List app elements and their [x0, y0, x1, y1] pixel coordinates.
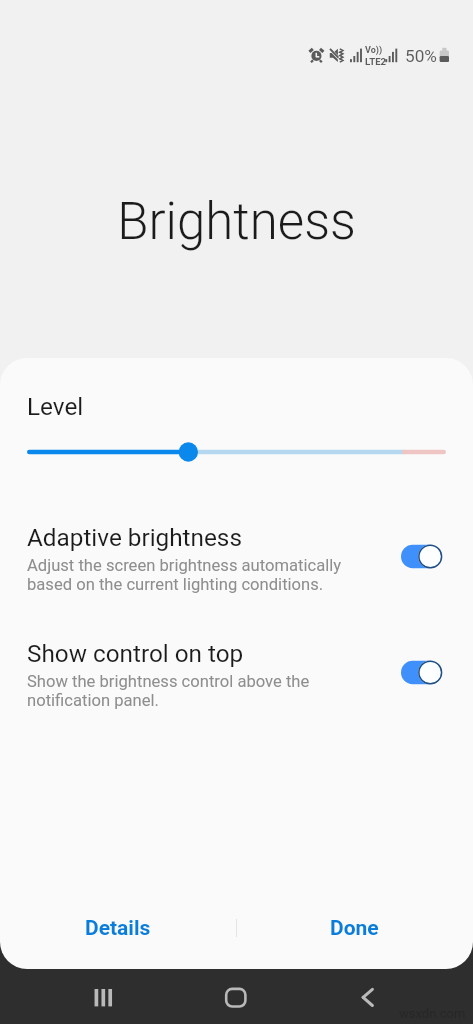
staticText: 50%	[405, 46, 437, 66]
button[interactable]: Toggle, on	[401, 544, 443, 569]
staticText: Level	[27, 392, 84, 420]
button[interactable]: Recent apps	[59, 969, 148, 1024]
button[interactable]: Adaptive brightness	[0, 523, 473, 613]
button[interactable]: Done	[236, 900, 473, 956]
staticText: Show control on top	[27, 639, 244, 667]
staticText: Done	[330, 916, 379, 941]
staticText: Details	[85, 916, 151, 941]
staticText: Adaptive brightness	[27, 523, 242, 551]
button[interactable]: Back	[323, 969, 412, 1024]
staticText: Adjust the screen brightness automatical…	[27, 556, 342, 594]
staticText: Show the brightness control above the no…	[27, 672, 310, 710]
button[interactable]: Details	[0, 900, 236, 956]
button[interactable]: Brightness level	[0, 437, 473, 466]
staticText: LTE2	[365, 56, 387, 67]
staticText: Brightness	[0, 192, 473, 252]
button[interactable]: Home	[191, 969, 280, 1024]
button[interactable]: Toggle, on	[401, 660, 443, 685]
button[interactable]: Show control on top	[0, 639, 473, 729]
staticText: Vo))	[365, 45, 383, 56]
